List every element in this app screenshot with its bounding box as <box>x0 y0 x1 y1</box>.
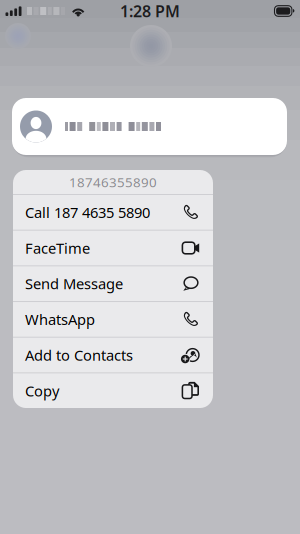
staticText: Send Message <box>25 274 123 293</box>
staticText: FaceTime <box>25 238 90 258</box>
staticText: WhatsApp <box>25 310 95 329</box>
staticText: Call 187 4635 5890 <box>25 203 150 222</box>
button[interactable]: Send Message <box>13 266 213 301</box>
button[interactable] <box>12 98 287 155</box>
button[interactable]: Call 187 4635 5890 <box>13 195 213 230</box>
staticText: Add to Contacts <box>25 345 133 365</box>
button[interactable]: FaceTime <box>13 231 213 265</box>
button[interactable]: WhatsApp <box>13 302 213 337</box>
button[interactable]: Copy <box>13 373 213 408</box>
staticText: 18746355890 <box>69 173 157 191</box>
staticText: 1:28 PM <box>120 0 180 22</box>
staticText: Copy <box>25 381 59 400</box>
button[interactable]: Add to Contacts <box>13 338 213 372</box>
